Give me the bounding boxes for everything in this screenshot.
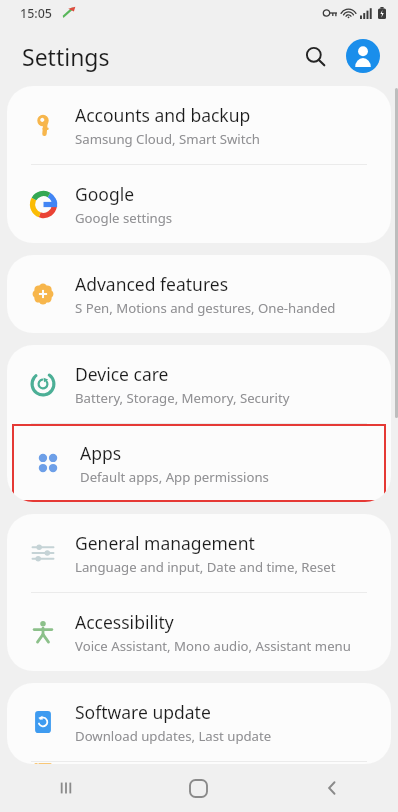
button[interactable]: Software update: [7, 683, 391, 761]
staticText: S Pen, Motions and gestures, One-handed …: [75, 299, 373, 317]
button[interactable]: Accessibility: [7, 593, 391, 671]
staticText: Google settings: [75, 209, 173, 227]
staticText: Advanced features: [75, 272, 229, 296]
staticText: Settings: [22, 41, 110, 72]
staticText: Device care: [75, 362, 169, 386]
button[interactable]: Apps: [12, 424, 386, 502]
staticText: Download updates, Last update: [75, 727, 272, 745]
staticText: Language and input, Date and time, Reset: [75, 558, 336, 576]
staticText: Google: [75, 182, 135, 206]
button[interactable]: Accounts and backup: [7, 86, 391, 164]
staticText: 15:05: [20, 5, 53, 22]
staticText: General management: [75, 531, 255, 555]
button[interactable]: Home: [132, 764, 265, 812]
staticText: Accounts and backup: [75, 103, 251, 127]
button[interactable]: Recents: [0, 764, 132, 812]
staticText: Default apps, App permissions: [80, 468, 269, 486]
button[interactable]: Google: [7, 165, 391, 243]
staticText: Voice Assistant, Mono audio, Assistant m…: [75, 637, 351, 655]
button[interactable]: User manual: [7, 762, 391, 764]
button[interactable]: Advanced features: [7, 255, 391, 333]
button[interactable]: Back: [265, 764, 398, 812]
button[interactable]: Device care: [7, 345, 391, 423]
staticText: Accessibility: [75, 610, 174, 634]
staticText: Software update: [75, 700, 211, 724]
staticText: Apps: [80, 441, 122, 465]
staticText: Samsung Cloud, Smart Switch: [75, 130, 260, 148]
button[interactable]: General management: [7, 514, 391, 592]
button[interactable]: Search: [298, 39, 332, 73]
staticText: Battery, Storage, Memory, Security: [75, 389, 290, 407]
button[interactable]: Account: [346, 39, 380, 73]
